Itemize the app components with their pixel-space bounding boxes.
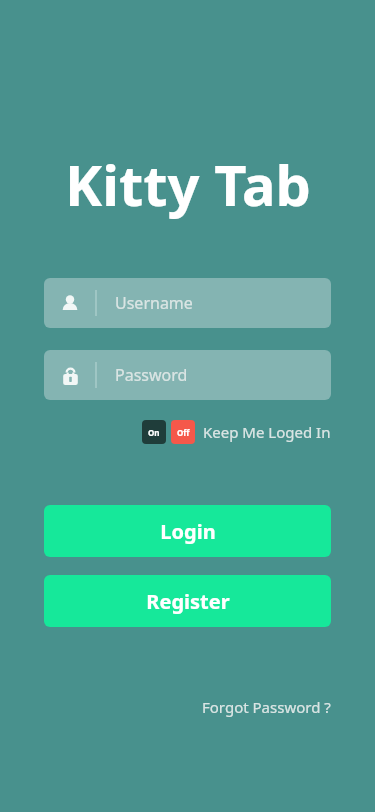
- staticText: On: [148, 427, 160, 438]
- staticText: Register: [146, 588, 230, 615]
- staticText: Forgot Password ?: [202, 697, 331, 717]
- staticText: Password: [115, 364, 188, 386]
- button[interactable]: Login: [44, 505, 331, 557]
- staticText: Kitty Tab: [65, 146, 311, 222]
- button[interactable]: Forgot Password ?: [202, 697, 331, 717]
- button[interactable]: Username: [44, 278, 331, 328]
- staticText: Username: [115, 292, 193, 314]
- staticText: Login: [160, 518, 216, 545]
- staticText: Keep Me Loged In: [203, 422, 331, 442]
- staticText: Off: [177, 427, 190, 438]
- button[interactable]: Password: [44, 350, 331, 400]
- button[interactable]: Register: [44, 575, 331, 627]
- button[interactable]: On: [142, 420, 331, 444]
